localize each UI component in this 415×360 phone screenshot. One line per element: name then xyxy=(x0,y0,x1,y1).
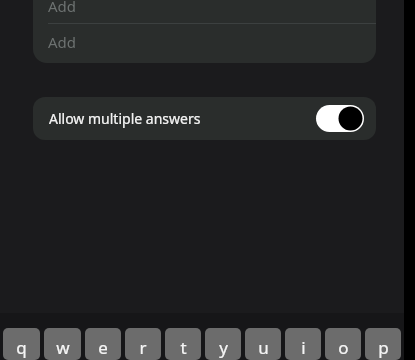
button[interactable]: t xyxy=(165,328,201,360)
button[interactable]: e xyxy=(85,328,121,360)
button[interactable]: o xyxy=(325,328,361,360)
staticText: r xyxy=(139,336,147,359)
staticText: w xyxy=(56,336,70,359)
button[interactable]: p xyxy=(365,328,401,360)
button[interactable]: i xyxy=(285,328,321,360)
staticText: u xyxy=(258,336,269,359)
button[interactable]: Allow multiple answers toggle, on xyxy=(316,105,364,132)
staticText: Add xyxy=(48,32,77,52)
button[interactable]: y xyxy=(205,328,241,360)
staticText: p xyxy=(378,336,389,359)
staticText: i xyxy=(301,336,306,359)
staticText: t xyxy=(180,336,187,359)
staticText: Allow multiple answers xyxy=(49,109,201,128)
staticText: e xyxy=(98,336,108,359)
button[interactable]: u xyxy=(245,328,281,360)
staticText: Add xyxy=(48,0,77,16)
button[interactable]: Allow multiple answers xyxy=(33,97,376,140)
button[interactable]: w xyxy=(44,328,81,360)
staticText: o xyxy=(338,336,349,359)
button[interactable]: Add xyxy=(33,0,376,23)
staticText: y xyxy=(219,336,228,359)
button[interactable]: q xyxy=(3,328,40,360)
button[interactable]: r xyxy=(125,328,161,360)
staticText: q xyxy=(16,336,27,359)
button[interactable]: Add xyxy=(33,24,376,63)
